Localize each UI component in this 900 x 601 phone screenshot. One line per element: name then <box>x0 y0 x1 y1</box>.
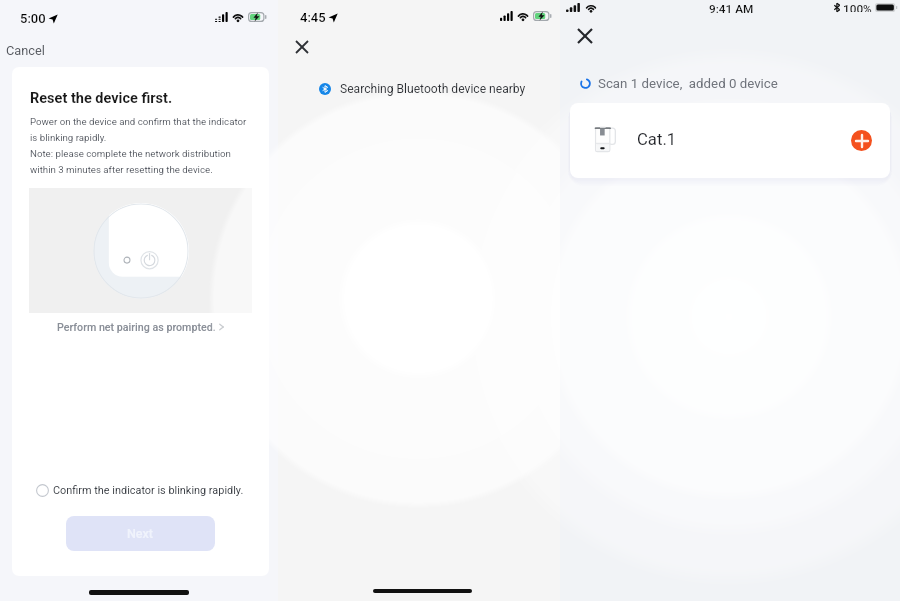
staticText: 100% <box>843 2 872 12</box>
button[interactable]: Perform net pairing as prompted. <box>12 318 269 336</box>
button[interactable]: Cancel <box>6 39 45 61</box>
staticText: 5:00 <box>20 11 46 26</box>
staticText: Reset the device first. <box>30 90 173 107</box>
button[interactable]: Confirm the indicator is blinking rapidl… <box>36 481 244 499</box>
button[interactable]: Cat.1 <box>570 103 890 178</box>
staticText: Next <box>127 526 154 541</box>
button[interactable]: Close <box>572 23 598 49</box>
staticText: Perform net pairing as prompted. <box>57 321 216 334</box>
button[interactable]: Next <box>66 516 215 551</box>
button[interactable]: Add device <box>851 130 872 151</box>
staticText: Power on the device and confirm that the… <box>30 116 247 175</box>
staticText: Cat.1 <box>637 130 677 150</box>
staticText: Confirm the indicator is blinking rapidl… <box>53 484 244 497</box>
button[interactable]: Close <box>290 35 314 59</box>
staticText: 9:41 AM <box>709 2 754 16</box>
staticText: 4:45 <box>300 10 326 25</box>
staticText: Cancel <box>6 43 45 58</box>
staticText: Searching Bluetooth device nearby <box>340 82 526 96</box>
staticText: Scan 1 device, added 0 device <box>598 76 778 92</box>
